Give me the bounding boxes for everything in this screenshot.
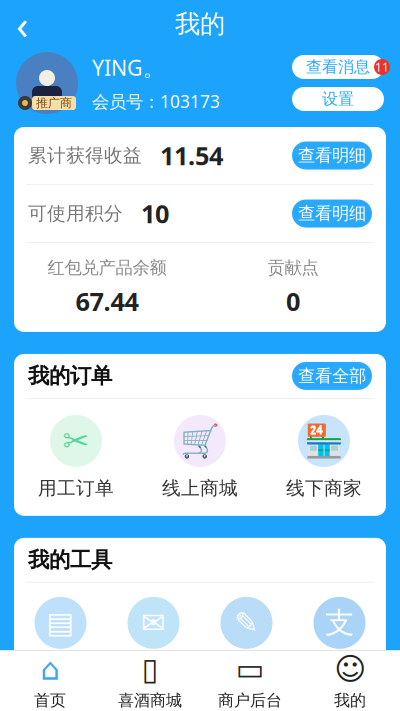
- button[interactable]: ✂: [14, 415, 138, 500]
- staticText: 我的: [175, 8, 225, 39]
- button[interactable]: 🏪: [262, 415, 386, 500]
- staticText: 线上商城: [162, 477, 238, 500]
- button[interactable]: ⌂: [0, 651, 100, 711]
- staticText: ▯: [141, 652, 158, 687]
- staticText: 我的订单: [28, 363, 112, 389]
- button[interactable]: 设置: [292, 87, 384, 111]
- staticText: 11: [375, 59, 389, 75]
- button[interactable]: ▤: [14, 597, 107, 649]
- staticText: 查看明细: [298, 203, 366, 224]
- staticText: ✉: [141, 606, 166, 639]
- staticText: 我的: [334, 691, 366, 710]
- staticText: 累计获得收益: [28, 144, 142, 167]
- button[interactable]: 查看全部: [292, 362, 372, 390]
- staticText: 查看明细: [298, 145, 366, 166]
- staticText: 10: [141, 197, 169, 230]
- staticText: ☺: [334, 652, 366, 687]
- staticText: 推广商: [36, 96, 72, 110]
- staticText: 喜酒商城: [118, 691, 182, 710]
- staticText: 查看消息: [306, 57, 370, 77]
- button[interactable]: 查看消息: [292, 55, 384, 79]
- staticText: 我的工具: [28, 547, 112, 573]
- staticText: 用工订单: [38, 477, 114, 500]
- button[interactable]: 支: [293, 597, 386, 649]
- staticText: 11.54: [160, 139, 223, 172]
- staticText: YING。: [92, 53, 164, 82]
- staticText: ▤: [46, 606, 74, 639]
- staticText: 贡献点: [267, 257, 318, 278]
- staticText: 支: [325, 605, 354, 641]
- staticText: 可使用积分: [28, 202, 123, 225]
- button[interactable]: ✉: [107, 597, 200, 649]
- button[interactable]: 查看明细: [292, 199, 372, 227]
- button[interactable]: ▯: [100, 651, 200, 711]
- button[interactable]: 返回: [0, 7, 44, 41]
- staticText: ‹: [16, 0, 28, 50]
- staticText: ✂: [62, 423, 89, 459]
- staticText: 查看全部: [298, 365, 366, 387]
- staticText: 0: [286, 284, 300, 318]
- staticText: 红包兑产品余额: [47, 257, 166, 278]
- staticText: 🛒: [180, 423, 220, 459]
- staticText: 🏪: [304, 423, 344, 459]
- button[interactable]: 🛒: [138, 415, 262, 500]
- button[interactable]: ✎: [200, 597, 293, 649]
- staticText: 会员号：103173: [92, 90, 220, 113]
- staticText: ⌂: [40, 652, 59, 687]
- staticText: 商户后台: [218, 691, 282, 710]
- staticText: ✎: [234, 606, 259, 639]
- button[interactable]: ☺: [300, 651, 400, 711]
- staticText: 67.44: [75, 284, 138, 318]
- button[interactable]: 查看明细: [292, 141, 372, 169]
- button[interactable]: ▭: [200, 651, 300, 711]
- staticText: 首页: [34, 691, 66, 710]
- staticText: 设置: [322, 89, 354, 109]
- staticText: 线下商家: [286, 477, 362, 500]
- staticText: ▭: [235, 652, 264, 687]
